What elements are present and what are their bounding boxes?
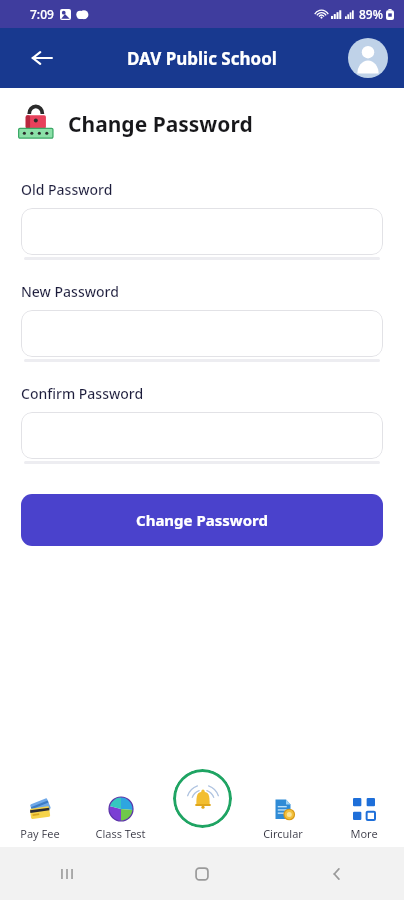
button[interactable]	[21, 208, 383, 255]
button[interactable]: Notifications	[173, 769, 232, 828]
staticText: 89%	[359, 6, 383, 22]
staticText: Pay Fee	[20, 826, 60, 841]
staticText: More	[350, 826, 378, 841]
staticText: Change Password	[68, 110, 253, 139]
staticText: Change Password	[136, 510, 268, 530]
staticText: Old Password	[21, 180, 113, 199]
button[interactable]: Back	[20, 36, 64, 80]
button[interactable]: Class Test	[80, 790, 161, 847]
staticText: Confirm Password	[21, 384, 144, 403]
staticText: New Password	[21, 282, 119, 301]
staticText: Circular	[263, 826, 303, 841]
button[interactable]: Pay Fee	[0, 790, 80, 847]
button[interactable]: More	[323, 790, 404, 847]
staticText: DAV Public School	[127, 47, 277, 70]
button[interactable]	[21, 412, 383, 459]
button[interactable]	[21, 310, 383, 357]
button[interactable]: Circular	[242, 790, 323, 847]
staticText: Class Test	[95, 826, 146, 841]
button[interactable]: Profile	[348, 38, 388, 78]
button[interactable]: Change Password	[21, 494, 383, 546]
staticText: 7:09	[30, 6, 54, 22]
